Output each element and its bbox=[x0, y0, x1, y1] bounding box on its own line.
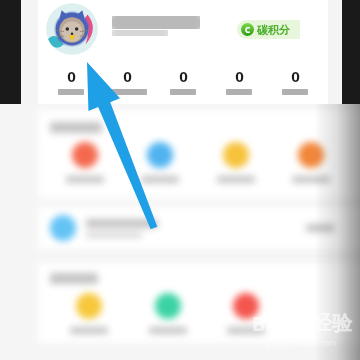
staticText: jingyan.baidu.com bbox=[267, 337, 337, 348]
button[interactable] bbox=[132, 142, 188, 183]
staticText: 0 bbox=[179, 66, 188, 86]
button[interactable] bbox=[61, 293, 117, 334]
button[interactable] bbox=[283, 142, 339, 183]
button[interactable]: 0 bbox=[268, 66, 322, 95]
button[interactable]: 0 bbox=[212, 66, 266, 95]
button[interactable] bbox=[208, 142, 264, 183]
staticText: 0 bbox=[235, 66, 244, 86]
button[interactable]: 0 bbox=[44, 66, 98, 95]
button[interactable] bbox=[218, 293, 274, 334]
button[interactable] bbox=[140, 293, 196, 334]
staticText: Baidu bbox=[252, 310, 309, 337]
button[interactable]: C bbox=[237, 20, 300, 39]
staticText: 碳积分 bbox=[257, 23, 290, 37]
button[interactable] bbox=[57, 142, 113, 183]
staticText: 0 bbox=[123, 66, 132, 86]
button[interactable]: 0 bbox=[100, 66, 154, 95]
staticText: 经验 bbox=[312, 311, 352, 336]
button[interactable]: Profile avatar bbox=[46, 3, 98, 55]
staticText: 0 bbox=[67, 66, 76, 86]
button[interactable]: 0 bbox=[156, 66, 210, 95]
staticText: C bbox=[245, 24, 251, 35]
staticText: 0 bbox=[291, 66, 300, 86]
